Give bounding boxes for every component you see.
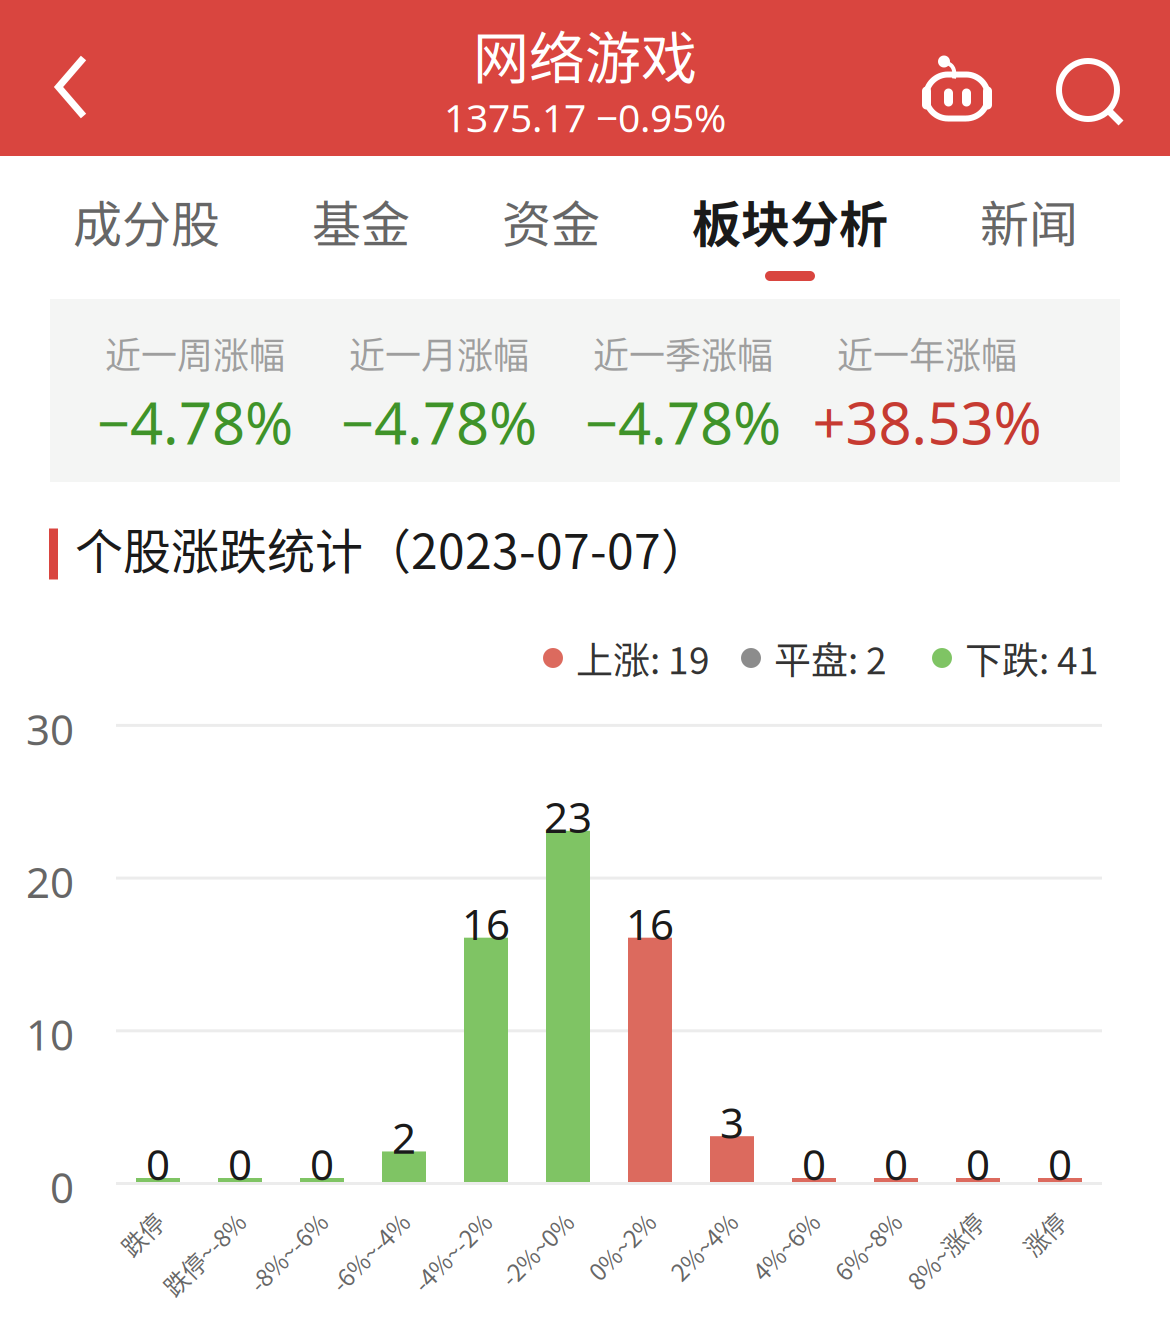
staticText: 0	[146, 1135, 170, 1193]
button[interactable]: 板块分析	[692, 156, 888, 299]
staticText: +38.53%	[812, 382, 1041, 461]
staticText: 上涨: 19	[576, 631, 710, 685]
staticText: 近一月涨幅	[349, 327, 529, 379]
staticText: 新闻	[980, 185, 1078, 256]
staticText: 个股涨跌统计（2023-07-07）	[75, 513, 709, 583]
staticText: -8%~-6%	[224, 1200, 323, 1234]
staticText: 16	[462, 895, 510, 952]
staticText: 涨停	[1013, 1200, 1061, 1234]
staticText: −4.78%	[341, 382, 537, 461]
staticText: 跌停	[111, 1200, 159, 1234]
staticText: -2%~0%	[478, 1200, 569, 1234]
staticText: -4%~-2%	[388, 1200, 487, 1234]
staticText: 近一年涨幅	[837, 327, 1017, 379]
staticText: 0	[802, 1135, 826, 1193]
staticText: 跌停~-8%	[137, 1200, 241, 1234]
staticText: 30	[26, 700, 74, 757]
staticText: 网络游戏	[473, 13, 697, 95]
staticText: 2%~4%	[650, 1200, 733, 1234]
staticText: 基金	[312, 185, 410, 256]
button[interactable]: 基金	[312, 156, 410, 299]
staticText: 板块分析	[692, 185, 888, 256]
button[interactable]: 资金	[502, 156, 600, 299]
staticText: 0	[966, 1135, 990, 1193]
staticText: −4.78%	[97, 382, 293, 461]
staticText: 下跌: 41	[965, 631, 1099, 685]
button[interactable]: Back	[16, 32, 126, 142]
staticText: 23	[544, 788, 592, 845]
staticText: 近一季涨幅	[593, 327, 773, 379]
button[interactable]: AI assistant	[905, 35, 1009, 139]
staticText: 近一周涨幅	[105, 327, 285, 379]
staticText: 平盘: 2	[774, 631, 887, 685]
staticText: -6%~-4%	[306, 1200, 405, 1234]
staticText: 0	[310, 1135, 334, 1193]
staticText: 0	[884, 1135, 908, 1193]
button[interactable]: 成分股	[73, 156, 220, 299]
staticText: 2	[392, 1109, 416, 1166]
staticText: 0	[50, 1158, 74, 1216]
button[interactable]: Search	[1042, 44, 1142, 144]
staticText: 0	[228, 1135, 252, 1193]
staticText: 成分股	[73, 185, 220, 256]
button[interactable]: 新闻	[980, 156, 1078, 299]
staticText: 3	[720, 1094, 744, 1151]
staticText: 1375.17 −0.95%	[444, 90, 726, 143]
staticText: 10	[26, 1006, 74, 1063]
staticText: 4%~6%	[732, 1200, 815, 1234]
staticText: 资金	[502, 185, 600, 256]
staticText: −4.78%	[585, 382, 781, 461]
staticText: 16	[626, 895, 674, 952]
staticText: 8%~涨停	[883, 1200, 979, 1234]
staticText: 6%~8%	[814, 1200, 897, 1234]
staticText: 0	[1048, 1135, 1072, 1193]
staticText: 0%~2%	[568, 1200, 651, 1234]
staticText: 20	[26, 853, 74, 910]
